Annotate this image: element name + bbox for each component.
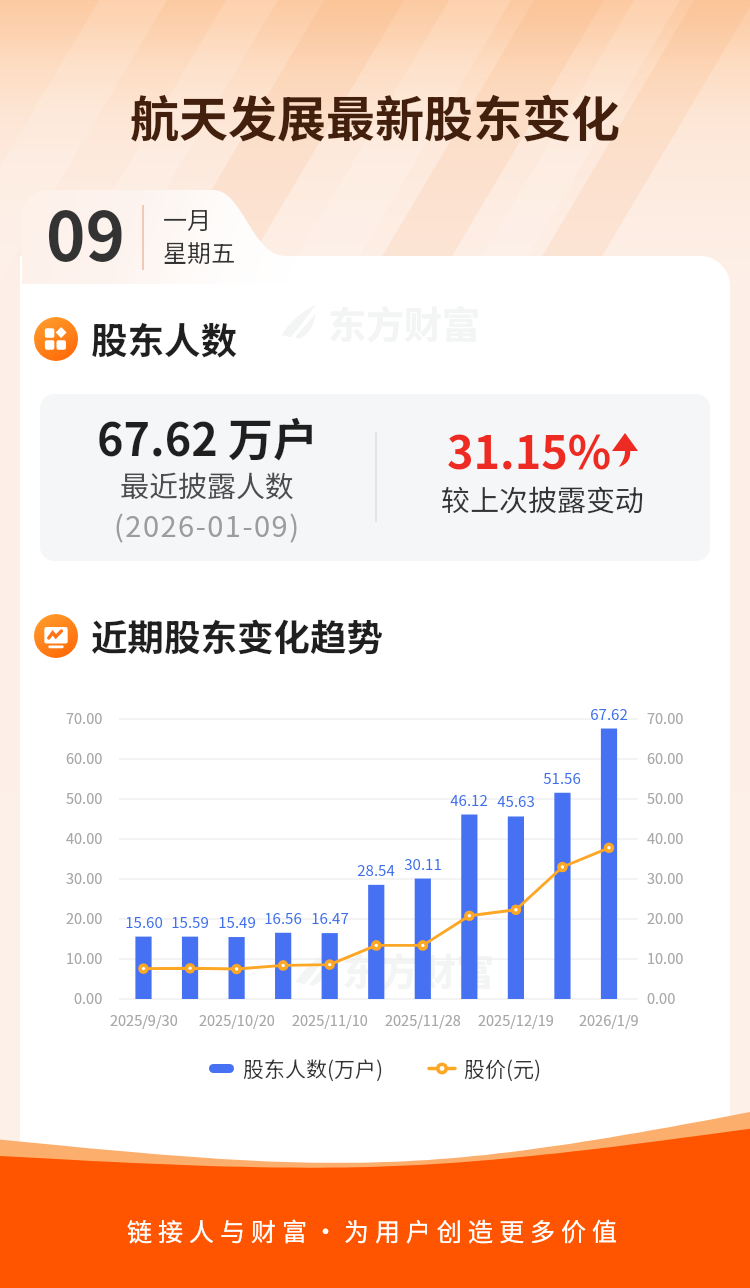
staticText: 航天发展最新股东变化 xyxy=(130,80,621,151)
staticText: 2026/1/9 xyxy=(579,1009,639,1030)
staticText: 50.00 xyxy=(647,787,684,808)
staticText: 链接人与财富·为用户创造更多价值 xyxy=(127,1212,624,1248)
staticText: 2025/11/10 xyxy=(292,1009,368,1030)
staticText: 51.56 xyxy=(543,767,581,789)
staticText: 15.60 xyxy=(125,911,163,933)
staticText: 较上次披露变动 xyxy=(441,477,645,519)
staticText: 30.11 xyxy=(404,853,442,875)
staticText: 60.00 xyxy=(66,747,103,768)
staticText: 70.00 xyxy=(647,707,684,728)
staticText: 60.00 xyxy=(647,747,684,768)
staticText: 20.00 xyxy=(647,907,684,928)
button[interactable]: 股价(元) xyxy=(429,1053,542,1083)
staticText: 股东人数(万户) xyxy=(243,1053,384,1083)
staticText: 东方财富 xyxy=(342,942,495,997)
staticText: 67.62 xyxy=(590,703,628,725)
staticText: 一月 xyxy=(163,201,211,236)
button[interactable] xyxy=(40,394,710,561)
staticText: 31.15% xyxy=(447,417,612,482)
staticText: 40.00 xyxy=(647,827,684,848)
staticText: 67.62 万户 xyxy=(97,404,319,469)
staticText: 46.12 xyxy=(450,789,488,811)
staticText: 09 xyxy=(46,183,126,280)
staticText: 近期股东变化趋势 xyxy=(91,609,383,662)
button[interactable]: 股东人数(万户) xyxy=(209,1053,384,1083)
staticText: 0.00 xyxy=(74,987,103,1008)
staticText: (2026-01-09) xyxy=(114,503,301,545)
button[interactable]: 股东人数 xyxy=(34,312,237,365)
staticText: 45.63 xyxy=(497,790,535,812)
staticText: 2025/9/30 xyxy=(110,1009,178,1030)
staticText: 15.59 xyxy=(171,911,209,933)
staticText: 30.00 xyxy=(647,867,684,888)
staticText: 2025/12/19 xyxy=(478,1009,554,1030)
staticText: 0.00 xyxy=(647,987,676,1008)
staticText: 2025/11/28 xyxy=(385,1009,461,1030)
staticText: 30.00 xyxy=(66,867,103,888)
button[interactable]: 近期股东变化趋势 xyxy=(34,609,383,662)
staticText: 50.00 xyxy=(66,787,103,808)
staticText: 20.00 xyxy=(66,907,103,928)
staticText: 16.56 xyxy=(264,907,302,929)
staticText: 15.49 xyxy=(218,911,256,933)
staticText: 最近披露人数 xyxy=(120,463,295,505)
staticText: 28.54 xyxy=(357,859,395,881)
staticText: 70.00 xyxy=(66,707,103,728)
staticText: 16.47 xyxy=(311,907,349,929)
staticText: 东方财富 xyxy=(328,295,481,350)
staticText: 40.00 xyxy=(66,827,103,848)
staticText: 10.00 xyxy=(66,947,103,968)
staticText: 10.00 xyxy=(647,947,684,968)
staticText: 2025/10/20 xyxy=(199,1009,275,1030)
staticText: 股东人数 xyxy=(91,312,237,365)
staticText: 星期五 xyxy=(163,234,235,269)
staticText: 股价(元) xyxy=(464,1053,542,1083)
